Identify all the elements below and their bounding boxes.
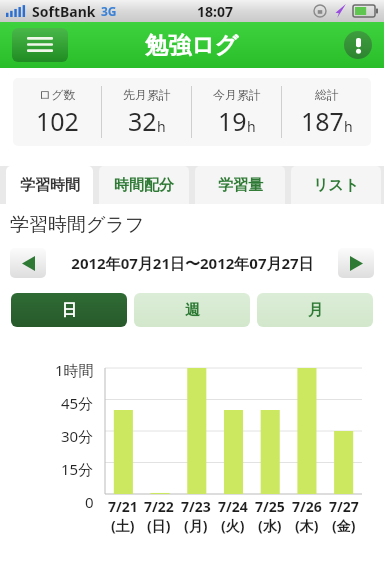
button[interactable]: Menu	[12, 28, 68, 62]
staticText: 3G	[101, 3, 117, 19]
button[interactable]: 週	[134, 293, 250, 327]
staticText: 7/23	[181, 497, 211, 516]
button[interactable]: Next week	[338, 248, 374, 278]
staticText: (土)	[111, 516, 135, 535]
button[interactable]: リスト	[291, 166, 381, 204]
staticText: 7/24	[218, 497, 248, 516]
staticText: h	[157, 117, 166, 136]
button[interactable]: 日	[11, 293, 127, 327]
staticText: 18:07	[197, 2, 233, 21]
button[interactable]: 学習量	[195, 166, 285, 204]
button[interactable]: Info	[344, 31, 372, 59]
staticText: 学習量	[218, 176, 263, 195]
staticText: 0	[85, 492, 94, 512]
staticText: 月	[308, 301, 323, 320]
staticText: (月)	[184, 516, 208, 535]
staticText: 15分	[61, 459, 94, 479]
staticText: リスト	[313, 176, 360, 195]
staticText: 7/26	[292, 497, 322, 516]
staticText: 102	[36, 104, 79, 138]
staticText: h	[247, 117, 256, 136]
staticText: SoftBank	[32, 2, 96, 21]
staticText: 7/22	[144, 497, 174, 516]
staticText: 7/21	[108, 497, 138, 516]
staticText: 時間配分	[114, 176, 174, 195]
button[interactable]: 時間配分	[99, 166, 189, 204]
staticText: 学習時間	[20, 176, 80, 195]
staticText: 45分	[61, 393, 94, 413]
staticText: 19	[218, 104, 247, 138]
button[interactable]: 学習時間	[6, 166, 93, 204]
staticText: 1時間	[55, 360, 94, 380]
staticText: 総計	[315, 87, 339, 102]
staticText: h	[344, 117, 353, 136]
staticText: 30分	[61, 426, 94, 446]
staticText: (金)	[332, 516, 356, 535]
staticText: (火)	[221, 516, 245, 535]
staticText: 7/27	[329, 497, 359, 516]
staticText: 2012年07月21日〜2012年07月27日	[71, 253, 314, 273]
staticText: 先月累計	[123, 87, 171, 102]
staticText: 日	[62, 301, 77, 320]
staticText: 7/25	[255, 497, 285, 516]
staticText: 勉強ログ	[145, 31, 239, 60]
staticText: ログ数	[39, 87, 76, 102]
staticText: 学習時間グラフ	[10, 213, 145, 237]
staticText: 187	[301, 104, 344, 138]
staticText: (日)	[147, 516, 171, 535]
staticText: 32	[128, 104, 157, 138]
staticText: 今月累計	[213, 87, 261, 102]
button[interactable]: 月	[257, 293, 373, 327]
staticText: 週	[185, 301, 200, 320]
button[interactable]: Previous week	[10, 248, 46, 278]
staticText: (木)	[295, 516, 319, 535]
staticText: (水)	[258, 516, 282, 535]
